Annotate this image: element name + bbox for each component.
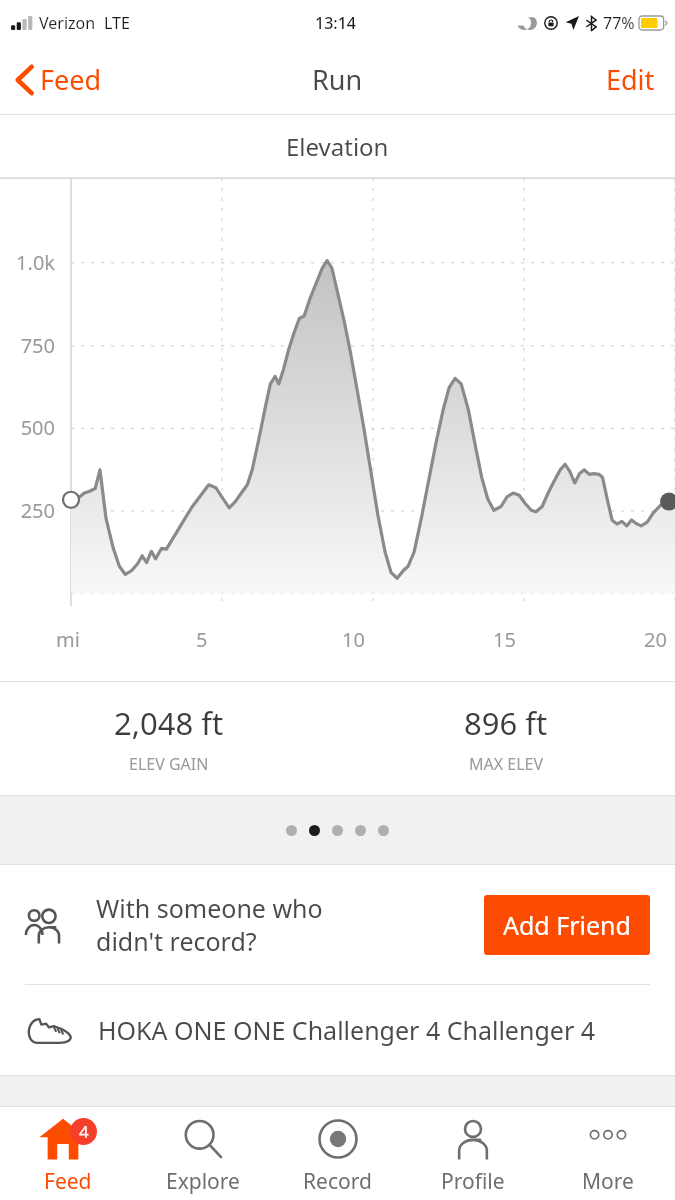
staticText: 750 bbox=[0, 332, 55, 359]
staticText: Add Friend bbox=[503, 908, 631, 942]
button[interactable]: Add Friend bbox=[484, 895, 650, 955]
button[interactable]: Explore bbox=[135, 1107, 270, 1200]
staticText: 500 bbox=[0, 414, 55, 441]
staticText: mi bbox=[56, 626, 80, 653]
button[interactable]: Record bbox=[270, 1107, 405, 1200]
staticText: 896 ft bbox=[464, 702, 548, 744]
other: Record bbox=[317, 1118, 359, 1160]
staticText: 5 bbox=[196, 626, 208, 653]
staticText: Run bbox=[312, 61, 363, 98]
button[interactable]: Feed bbox=[12, 55, 106, 104]
staticText: Verizon bbox=[39, 12, 96, 34]
staticText: 77% bbox=[603, 12, 635, 34]
staticText: ELEV GAIN bbox=[129, 753, 209, 775]
staticText: 2,048 ft bbox=[114, 702, 224, 744]
button[interactable]: HOKA ONE ONE Challenger 4 Challenger 4 bbox=[0, 985, 675, 1075]
staticText: More bbox=[582, 1167, 634, 1196]
staticText: HOKA ONE ONE Challenger 4 Challenger 4 bbox=[98, 1013, 596, 1047]
staticText: Edit bbox=[606, 61, 655, 98]
other: More bbox=[587, 1118, 629, 1160]
staticText: Profile bbox=[441, 1167, 505, 1196]
staticText: Record bbox=[303, 1167, 372, 1196]
staticText: 15 bbox=[493, 626, 516, 653]
other: Explore bbox=[182, 1118, 224, 1160]
staticText: 13:14 bbox=[315, 12, 356, 34]
staticText: With someone who didn't record? bbox=[96, 891, 484, 958]
staticText: 1.0k bbox=[0, 249, 55, 276]
button[interactable]: 4 bbox=[0, 1107, 135, 1200]
staticText: 250 bbox=[0, 497, 55, 524]
staticText: Feed bbox=[40, 61, 102, 98]
staticText: 4 bbox=[79, 1120, 89, 1143]
other: Profile bbox=[452, 1118, 494, 1160]
staticText: Explore bbox=[166, 1167, 240, 1196]
staticText: 10 bbox=[342, 626, 365, 653]
staticText: MAX ELEV bbox=[469, 753, 544, 775]
button[interactable]: 2,048 ft bbox=[0, 682, 337, 795]
staticText: Elevation bbox=[286, 130, 389, 163]
button[interactable]: Edit bbox=[600, 55, 661, 104]
button[interactable]: With someone who didn't record? bbox=[0, 865, 675, 984]
button[interactable]: More bbox=[540, 1107, 675, 1200]
staticText: Feed bbox=[44, 1167, 92, 1196]
button[interactable]: 896 ft bbox=[337, 682, 675, 795]
staticText: 20 bbox=[644, 626, 667, 653]
button[interactable]: Profile bbox=[405, 1107, 540, 1200]
staticText: LTE bbox=[104, 12, 130, 34]
